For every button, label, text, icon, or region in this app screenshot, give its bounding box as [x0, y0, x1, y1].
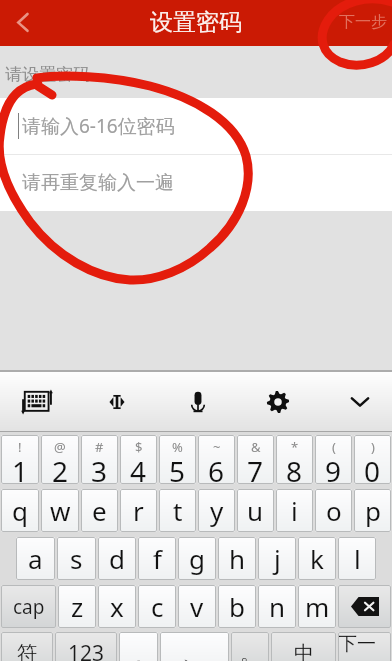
button[interactable]: !	[1, 435, 39, 484]
button[interactable]: #	[81, 435, 118, 484]
staticText: 6	[208, 452, 225, 484]
staticText: 8	[286, 452, 303, 484]
button[interactable]: a	[16, 537, 55, 580]
button[interactable]: Settings	[250, 373, 306, 431]
button[interactable]: i	[276, 489, 313, 532]
button[interactable]: l	[338, 537, 376, 580]
staticText: w	[50, 493, 71, 528]
button[interactable]: cap	[1, 585, 56, 628]
button[interactable]: m	[298, 585, 336, 628]
button[interactable]: e	[81, 489, 118, 532]
button[interactable]: ,	[119, 632, 158, 661]
staticText: j	[274, 541, 281, 576]
staticText: q	[12, 493, 28, 528]
staticText: 下一步	[339, 12, 387, 32]
staticText: u	[247, 493, 264, 528]
staticText: 。	[240, 641, 260, 661]
button[interactable]: u	[237, 489, 274, 532]
button[interactable]: j	[258, 537, 296, 580]
staticText: ,	[135, 636, 142, 661]
button[interactable]: $	[120, 435, 157, 484]
button[interactable]: w	[41, 489, 79, 532]
button[interactable]: x	[98, 585, 136, 628]
staticText: 请设置密码	[5, 64, 90, 85]
staticText: 中	[294, 641, 314, 661]
button[interactable]: s	[57, 537, 96, 580]
staticText: 123	[68, 639, 105, 661]
staticText: r	[133, 493, 144, 528]
button[interactable]: (	[315, 435, 352, 484]
button[interactable]: Move cursor	[89, 373, 145, 431]
staticText: 符	[17, 641, 37, 661]
staticText: 2	[52, 452, 69, 484]
button[interactable]: 请再重复输入一遍	[0, 155, 392, 211]
staticText: d	[109, 541, 125, 576]
button[interactable]: h	[218, 537, 256, 580]
button[interactable]: Backspace	[338, 585, 391, 628]
staticText: g	[189, 541, 205, 576]
button[interactable]: y	[198, 489, 235, 532]
button[interactable]: k	[298, 537, 336, 580]
button[interactable]: 符	[1, 632, 53, 661]
button[interactable]: g	[178, 537, 216, 580]
button[interactable]: c	[138, 585, 176, 628]
button[interactable]: 请输入6-16位密码	[0, 98, 392, 154]
staticText: #	[95, 438, 104, 456]
staticText: 1	[12, 452, 29, 484]
staticText: &	[251, 438, 261, 456]
staticText: $	[135, 438, 143, 456]
button[interactable]: b	[218, 585, 256, 628]
staticText: o	[326, 493, 342, 528]
button[interactable]: 下一步	[328, 0, 392, 46]
button[interactable]: Back	[0, 0, 46, 46]
button[interactable]: ~	[198, 435, 235, 484]
button[interactable]: r	[120, 489, 157, 532]
staticText: 0	[364, 452, 381, 484]
staticText: ~	[213, 438, 221, 456]
button[interactable]: v	[178, 585, 216, 628]
staticText: 请再重复输入一遍	[22, 171, 174, 195]
staticText: )	[371, 438, 375, 456]
button[interactable]: o	[315, 489, 352, 532]
button[interactable]: 123	[55, 632, 117, 661]
staticText: p	[365, 493, 381, 528]
button[interactable]: z	[58, 585, 96, 628]
button[interactable]: p	[354, 489, 391, 532]
staticText: 设置密码	[150, 8, 242, 37]
button[interactable]: 。	[231, 632, 269, 661]
button[interactable]: Keyboard layout	[9, 373, 65, 431]
button[interactable]: 中	[271, 632, 336, 661]
staticText: !	[18, 438, 22, 456]
staticText: @	[54, 438, 66, 456]
button[interactable]: q	[1, 489, 39, 532]
staticText: n	[269, 589, 286, 624]
button[interactable]: 下一项	[338, 632, 391, 661]
staticText: v	[190, 589, 204, 624]
button[interactable]: t	[159, 489, 196, 532]
button[interactable]: Hide keyboard	[332, 373, 388, 431]
staticText: (	[332, 438, 336, 456]
button[interactable]: %	[159, 435, 196, 484]
staticText: x	[110, 589, 124, 624]
button[interactable]: 、	[160, 632, 229, 661]
staticText: 下一项	[338, 632, 391, 661]
staticText: 9	[325, 452, 342, 484]
button[interactable]: Voice input	[170, 373, 226, 431]
button[interactable]: )	[354, 435, 391, 484]
staticText: z	[71, 589, 84, 624]
staticText: i	[291, 493, 298, 528]
button[interactable]: @	[41, 435, 79, 484]
button[interactable]: d	[98, 537, 136, 580]
button[interactable]: &	[237, 435, 274, 484]
button[interactable]: n	[258, 585, 296, 628]
staticText: 3	[91, 452, 108, 484]
staticText: m	[305, 589, 330, 624]
button[interactable]: f	[138, 537, 176, 580]
staticText: f	[153, 541, 162, 576]
staticText: cap	[13, 594, 45, 620]
staticText: 4	[130, 452, 147, 484]
staticText: c	[151, 589, 164, 624]
staticText: 请输入6-16位密码	[22, 113, 175, 139]
button[interactable]: *	[276, 435, 313, 484]
staticText: e	[92, 493, 107, 528]
